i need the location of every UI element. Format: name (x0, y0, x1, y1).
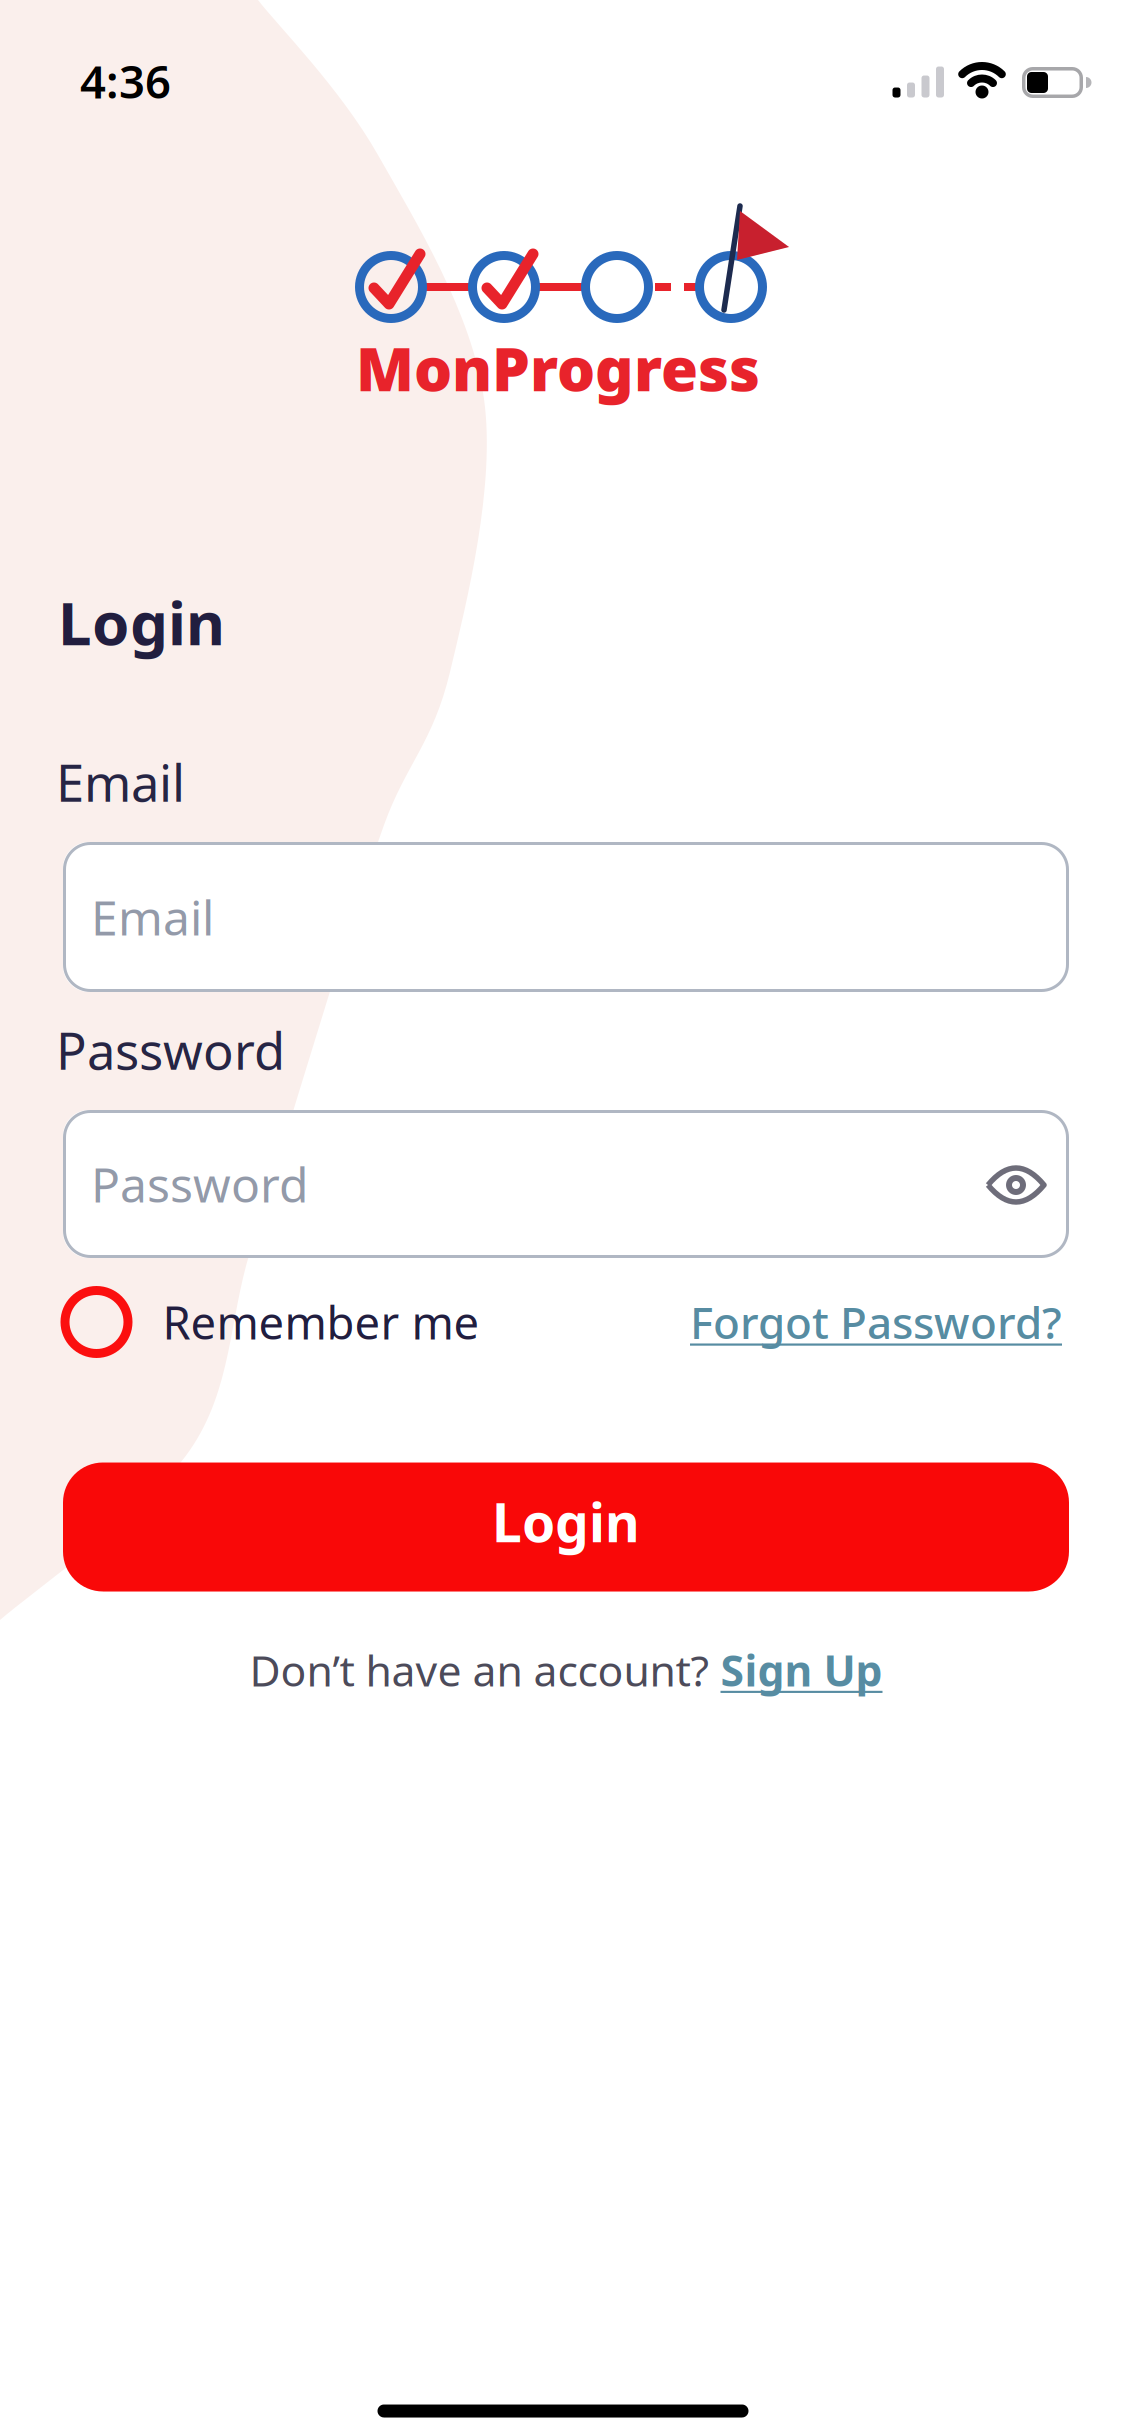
staticText: Don’t have an account? (249, 1642, 709, 1698)
button[interactable]: Password (63, 1110, 1069, 1258)
staticText: Password (56, 1016, 285, 1084)
button[interactable]: Login (63, 1462, 1069, 1591)
button[interactable]: Email (63, 842, 1069, 992)
staticText: Email (91, 885, 214, 949)
staticText: Login (492, 1486, 640, 1557)
staticText: Remember me (162, 1292, 479, 1352)
staticText: 4:36 (80, 51, 171, 111)
button[interactable]: Don’t have an account? (249, 1642, 882, 1698)
staticText: Sign Up (720, 1642, 882, 1698)
staticText: Forgot Password? (690, 1293, 1062, 1351)
button[interactable]: Remember me (60, 1286, 479, 1358)
button[interactable] (976, 1150, 1056, 1220)
staticText: Password (91, 1152, 309, 1216)
staticText: Login (58, 582, 225, 662)
staticText: Email (56, 748, 185, 816)
button[interactable]: Forgot Password? (690, 1293, 1062, 1351)
staticText: MonProgress (356, 328, 760, 408)
